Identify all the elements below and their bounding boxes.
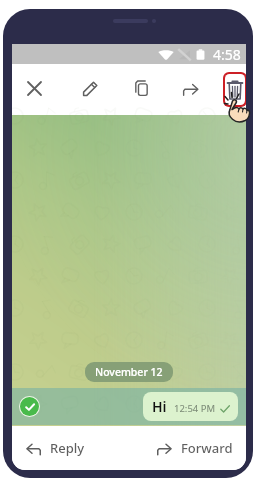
button[interactable]: Edit: [76, 74, 104, 102]
button[interactable]: Hi: [12, 388, 246, 425]
staticText: Reply: [50, 439, 85, 457]
staticText: Forward: [181, 439, 233, 457]
staticText: November 12: [95, 365, 163, 379]
staticText: Hi: [152, 397, 167, 416]
staticText: 4:58: [213, 45, 241, 64]
button[interactable]: Delete: [223, 72, 246, 107]
button[interactable]: Forward: [157, 439, 233, 457]
button[interactable]: Reply: [26, 439, 85, 457]
button[interactable]: Copy: [127, 74, 155, 102]
staticText: 12:54 PM: [174, 402, 216, 415]
button[interactable]: Close: [20, 74, 48, 102]
button[interactable]: Forward: [177, 74, 205, 102]
